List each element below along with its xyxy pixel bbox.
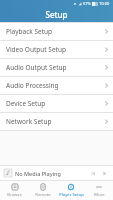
staticText: Browse — [7, 192, 22, 198]
staticText: Audio Output Setup — [6, 63, 67, 72]
staticText: 10:00 — [99, 1, 110, 6]
staticText: Video Output Setup — [6, 45, 66, 54]
staticText: Player Setup — [59, 192, 84, 198]
staticText: More — [94, 192, 105, 198]
staticText: Device Setup — [6, 99, 46, 108]
staticText: Network Setup — [6, 117, 52, 126]
staticText: Audio Processing — [6, 81, 59, 90]
staticText: Setup — [45, 9, 68, 20]
button[interactable]: Video Output Setup — [0, 41, 113, 59]
button[interactable]: Player Setup — [57, 181, 85, 200]
staticText: 57% — [83, 1, 91, 6]
button[interactable]: Browse — [0, 181, 29, 200]
button[interactable]: Remote — [29, 181, 57, 200]
button[interactable]: Play — [100, 169, 109, 178]
button[interactable]: No Media Playing — [0, 166, 113, 180]
button[interactable]: Audio Processing — [0, 77, 113, 95]
button[interactable]: Playback Setup — [0, 23, 113, 41]
staticText: Playback Setup — [6, 27, 53, 36]
staticText: No Media Playing — [15, 170, 61, 177]
staticText: Remote — [35, 192, 51, 198]
button[interactable]: Network Setup — [0, 113, 113, 131]
button[interactable]: Device Setup — [0, 95, 113, 113]
button[interactable]: Audio Output Setup — [0, 59, 113, 77]
button[interactable]: More — [85, 181, 113, 200]
button[interactable]: Previous — [89, 169, 98, 178]
